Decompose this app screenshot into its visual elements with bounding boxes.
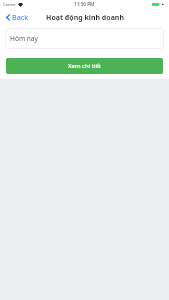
staticText: Hoạt động kinh doanh [46,13,124,23]
staticText: Carrier [3,2,17,7]
staticText: Xem chi tiết [68,62,102,70]
button[interactable]: Hôm nay [5,28,164,49]
staticText: Back [12,12,29,22]
button[interactable]: Back [5,10,30,24]
button[interactable]: Xem chi tiết [6,58,163,74]
staticText: Hôm nay [10,34,38,43]
other: Battery full [152,2,164,7]
staticText: 11:56 PM [74,1,95,7]
other: Wi-Fi signal [18,3,23,7]
